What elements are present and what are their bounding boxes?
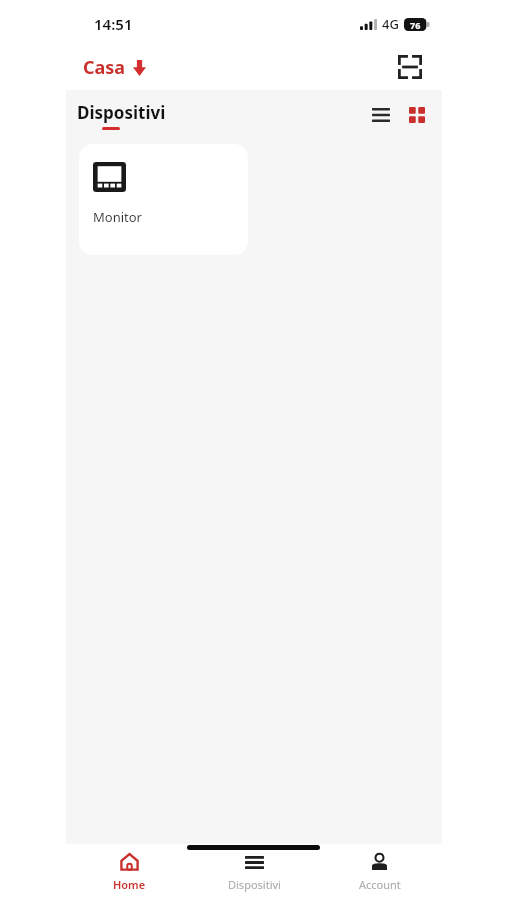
staticText: Casa	[83, 55, 126, 80]
staticText: Account	[359, 877, 401, 892]
staticText: Dispositivi	[228, 877, 281, 892]
button[interactable]: Vista elenco	[366, 100, 396, 130]
button[interactable]: Vista griglia	[402, 100, 432, 130]
button[interactable]: Dispositivi	[192, 846, 317, 898]
staticText: 4G	[382, 15, 399, 33]
button[interactable]: Scansiona codice	[394, 51, 426, 83]
staticText: 14:51	[94, 14, 133, 34]
button[interactable]: Monitor	[79, 144, 248, 255]
staticText: 76	[410, 19, 421, 31]
button[interactable]: Account	[317, 846, 442, 898]
staticText: Dispositivi	[77, 101, 166, 124]
button[interactable]: Casa	[79, 51, 150, 84]
button[interactable]: Home	[66, 846, 192, 898]
staticText: Monitor	[93, 208, 142, 226]
staticText: Home	[113, 877, 146, 892]
